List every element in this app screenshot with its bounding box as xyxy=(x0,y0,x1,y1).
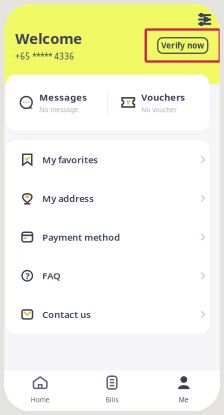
staticText: My favorites xyxy=(42,153,98,166)
staticText: Vouchers xyxy=(141,91,185,103)
staticText: Welcome xyxy=(15,28,82,48)
button[interactable]: Me xyxy=(148,371,220,411)
button[interactable]: Home xyxy=(4,371,76,411)
button[interactable]: Bills xyxy=(76,371,148,411)
staticText: No message xyxy=(39,105,78,114)
staticText: Me xyxy=(179,395,189,404)
button[interactable]: ? xyxy=(6,256,209,295)
button[interactable]: Vouchers xyxy=(108,91,209,114)
button[interactable]: My address xyxy=(6,179,209,218)
button[interactable]: Contact us xyxy=(6,295,209,334)
button[interactable]: Payment method xyxy=(6,218,209,256)
staticText: Bills xyxy=(105,395,118,404)
button[interactable]: Messages xyxy=(6,91,107,114)
staticText: FAQ xyxy=(42,270,60,282)
button[interactable]: Verify now xyxy=(158,38,208,53)
button[interactable]: Settings xyxy=(195,11,215,27)
button[interactable]: My favorites xyxy=(6,140,209,179)
staticText: Verify now xyxy=(161,40,204,51)
staticText: Contact us xyxy=(42,308,91,321)
staticText: Home xyxy=(31,395,50,404)
staticText: Payment method xyxy=(42,231,120,243)
staticText: +65 ***** 4336 xyxy=(15,51,74,62)
staticText: ? xyxy=(25,269,29,282)
staticText: Messages xyxy=(39,91,87,103)
staticText: No voucher xyxy=(141,105,177,114)
staticText: My address xyxy=(42,192,94,205)
